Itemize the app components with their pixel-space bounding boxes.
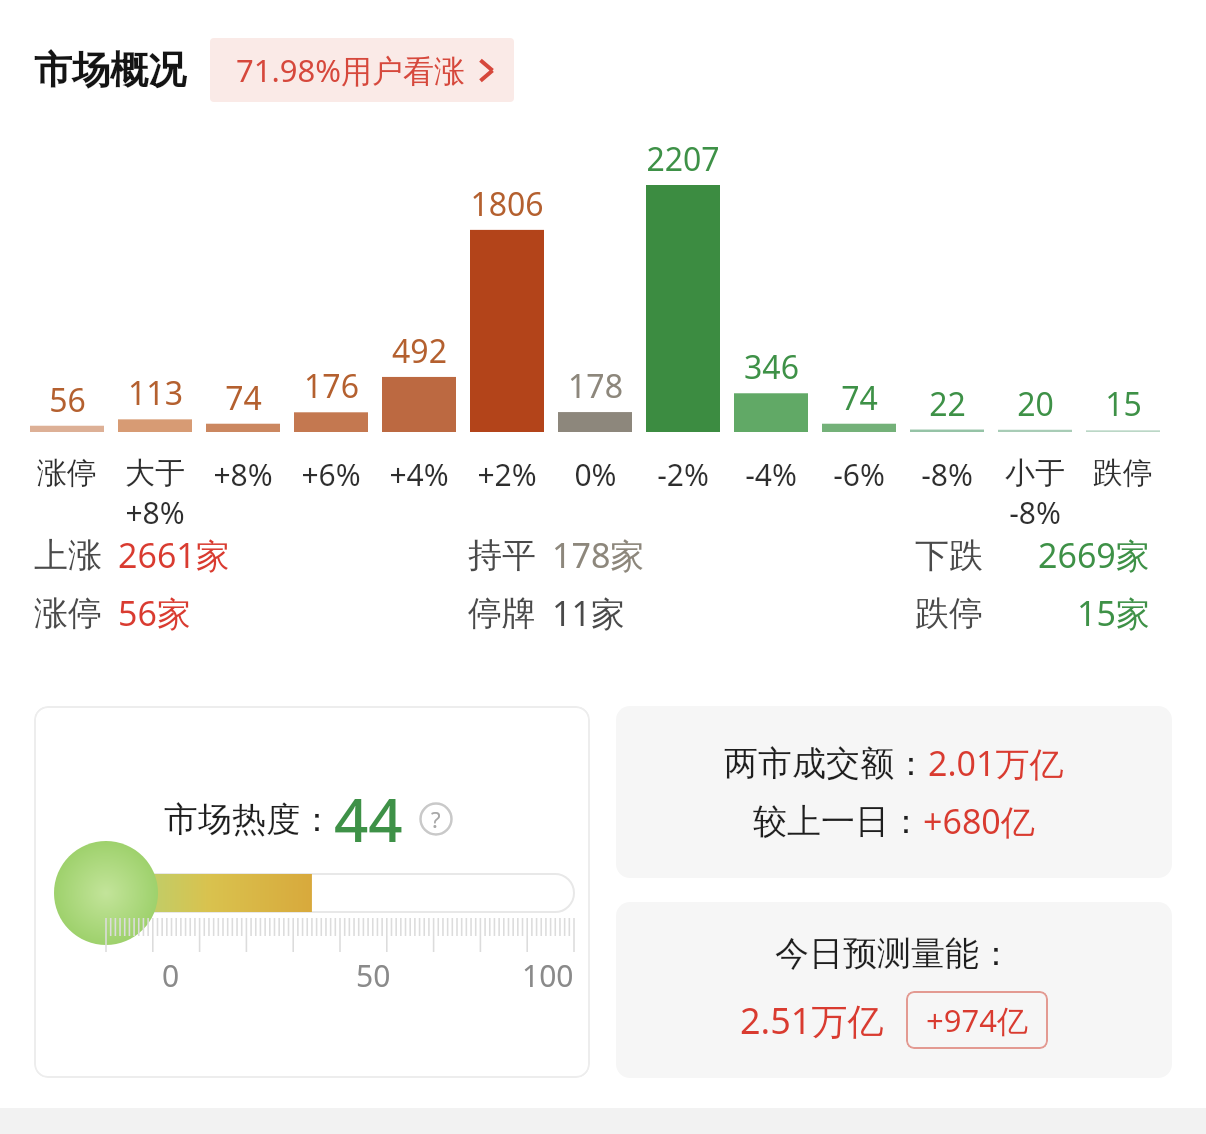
staticText: 下跌 [915,534,983,577]
staticText: 74 [225,376,262,420]
staticText: 56家 [118,590,191,636]
staticText: 44 [334,778,403,860]
staticText: 市场热度： [164,798,334,841]
staticText: 2.51万亿 [740,996,884,1045]
staticText: 跌停 [915,592,983,635]
staticText: 大于 [125,454,185,492]
staticText: 71.98%用户看涨 [236,49,465,91]
staticText: 涨停 [37,454,97,492]
staticText: 11家 [552,590,625,636]
staticText: 2669家 [1038,532,1150,578]
staticText: 今日预测量能： [775,932,1013,975]
staticText: 22 [929,382,966,426]
staticText: 市场概况 [34,46,186,94]
staticText: 2.01万亿 [928,740,1064,786]
staticText: -8% [921,454,973,495]
staticText: 113 [128,371,183,415]
staticText: +6% [301,454,361,495]
staticText: +2% [477,454,537,495]
staticText: 74 [841,376,878,420]
staticText: 20 [1017,382,1054,426]
button[interactable]: 市场热度： [34,706,590,1078]
staticText: -4% [745,454,797,495]
staticText: 178 [568,364,623,408]
button[interactable]: 帮助 [419,802,453,836]
staticText: 0 [162,955,180,996]
staticText: 小于 [1005,454,1065,492]
staticText: 178家 [552,532,645,578]
staticText: 50 [356,955,391,996]
staticText: 两市成交额： [724,742,928,785]
staticText: 2661家 [118,532,230,578]
staticText: 56 [49,378,86,422]
staticText: 15家 [1077,590,1150,636]
staticText: 较上一日： [753,800,923,843]
staticText: +8% [125,492,185,533]
staticText: +974亿 [926,999,1028,1041]
staticText: -6% [833,454,885,495]
staticText: 跌停 [1093,454,1153,492]
staticText: 346 [744,345,799,389]
staticText: -2% [657,454,709,495]
staticText: 0% [574,454,617,495]
staticText: 上涨 [34,534,102,577]
staticText: 1806 [470,182,544,226]
staticText: +8% [213,454,273,495]
staticText: 176 [304,364,359,408]
staticText: +4% [389,454,449,495]
staticText: 持平 [468,534,536,577]
staticText: 15 [1105,382,1142,426]
staticText: ? [431,804,441,834]
button[interactable]: 71.98%用户看涨 [210,38,514,102]
staticText: 2207 [646,137,720,181]
staticText: 停牌 [468,592,536,635]
staticText: -8% [1009,492,1061,533]
staticText: 492 [392,329,447,373]
staticText: 涨停 [34,592,102,635]
staticText: 100 [522,955,574,996]
staticText: +680亿 [923,798,1035,844]
button[interactable]: 今日预测量能： [616,902,1172,1078]
button[interactable]: 两市成交额： [616,706,1172,878]
